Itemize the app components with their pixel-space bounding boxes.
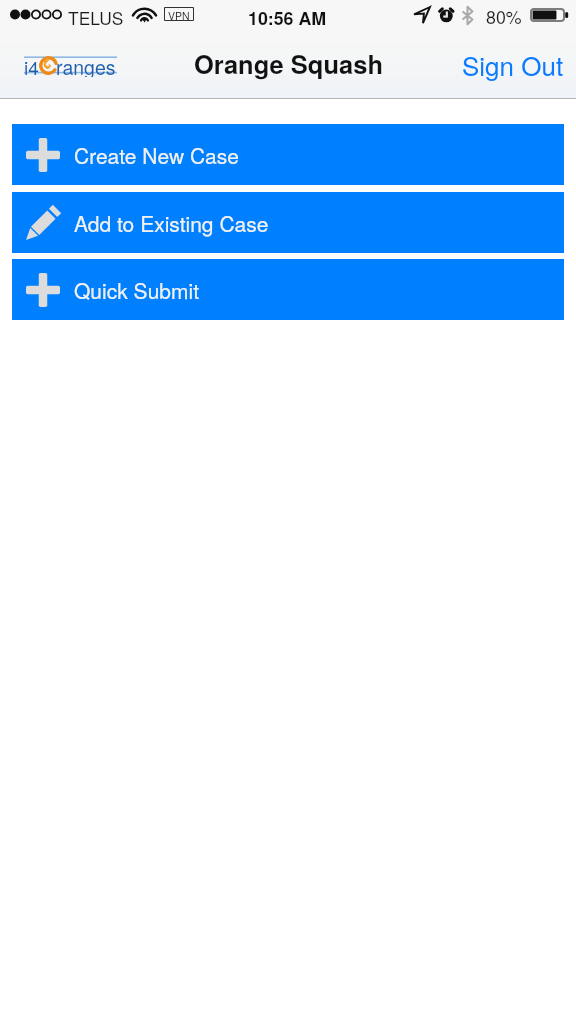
button[interactable]: i4oranges home bbox=[14, 47, 127, 83]
staticText: Sign Out bbox=[462, 46, 564, 83]
staticText: Quick Submit bbox=[74, 275, 199, 305]
staticText: TELUS bbox=[68, 5, 124, 30]
button[interactable]: Sign Out bbox=[450, 38, 576, 91]
staticText: VPN bbox=[168, 8, 190, 20]
staticText: 80% bbox=[486, 4, 522, 29]
staticText: Create New Case bbox=[74, 140, 239, 170]
staticText: 10:56 AM bbox=[248, 5, 327, 30]
button[interactable]: Quick Submit bbox=[12, 259, 564, 320]
staticText: Add to Existing Case bbox=[74, 208, 269, 238]
staticText: ranges bbox=[56, 53, 116, 77]
staticText: Orange Squash bbox=[194, 45, 383, 82]
button[interactable]: Add to Existing Case bbox=[12, 192, 564, 253]
button[interactable]: Create New Case bbox=[12, 124, 564, 185]
staticText: i4 bbox=[24, 53, 39, 77]
